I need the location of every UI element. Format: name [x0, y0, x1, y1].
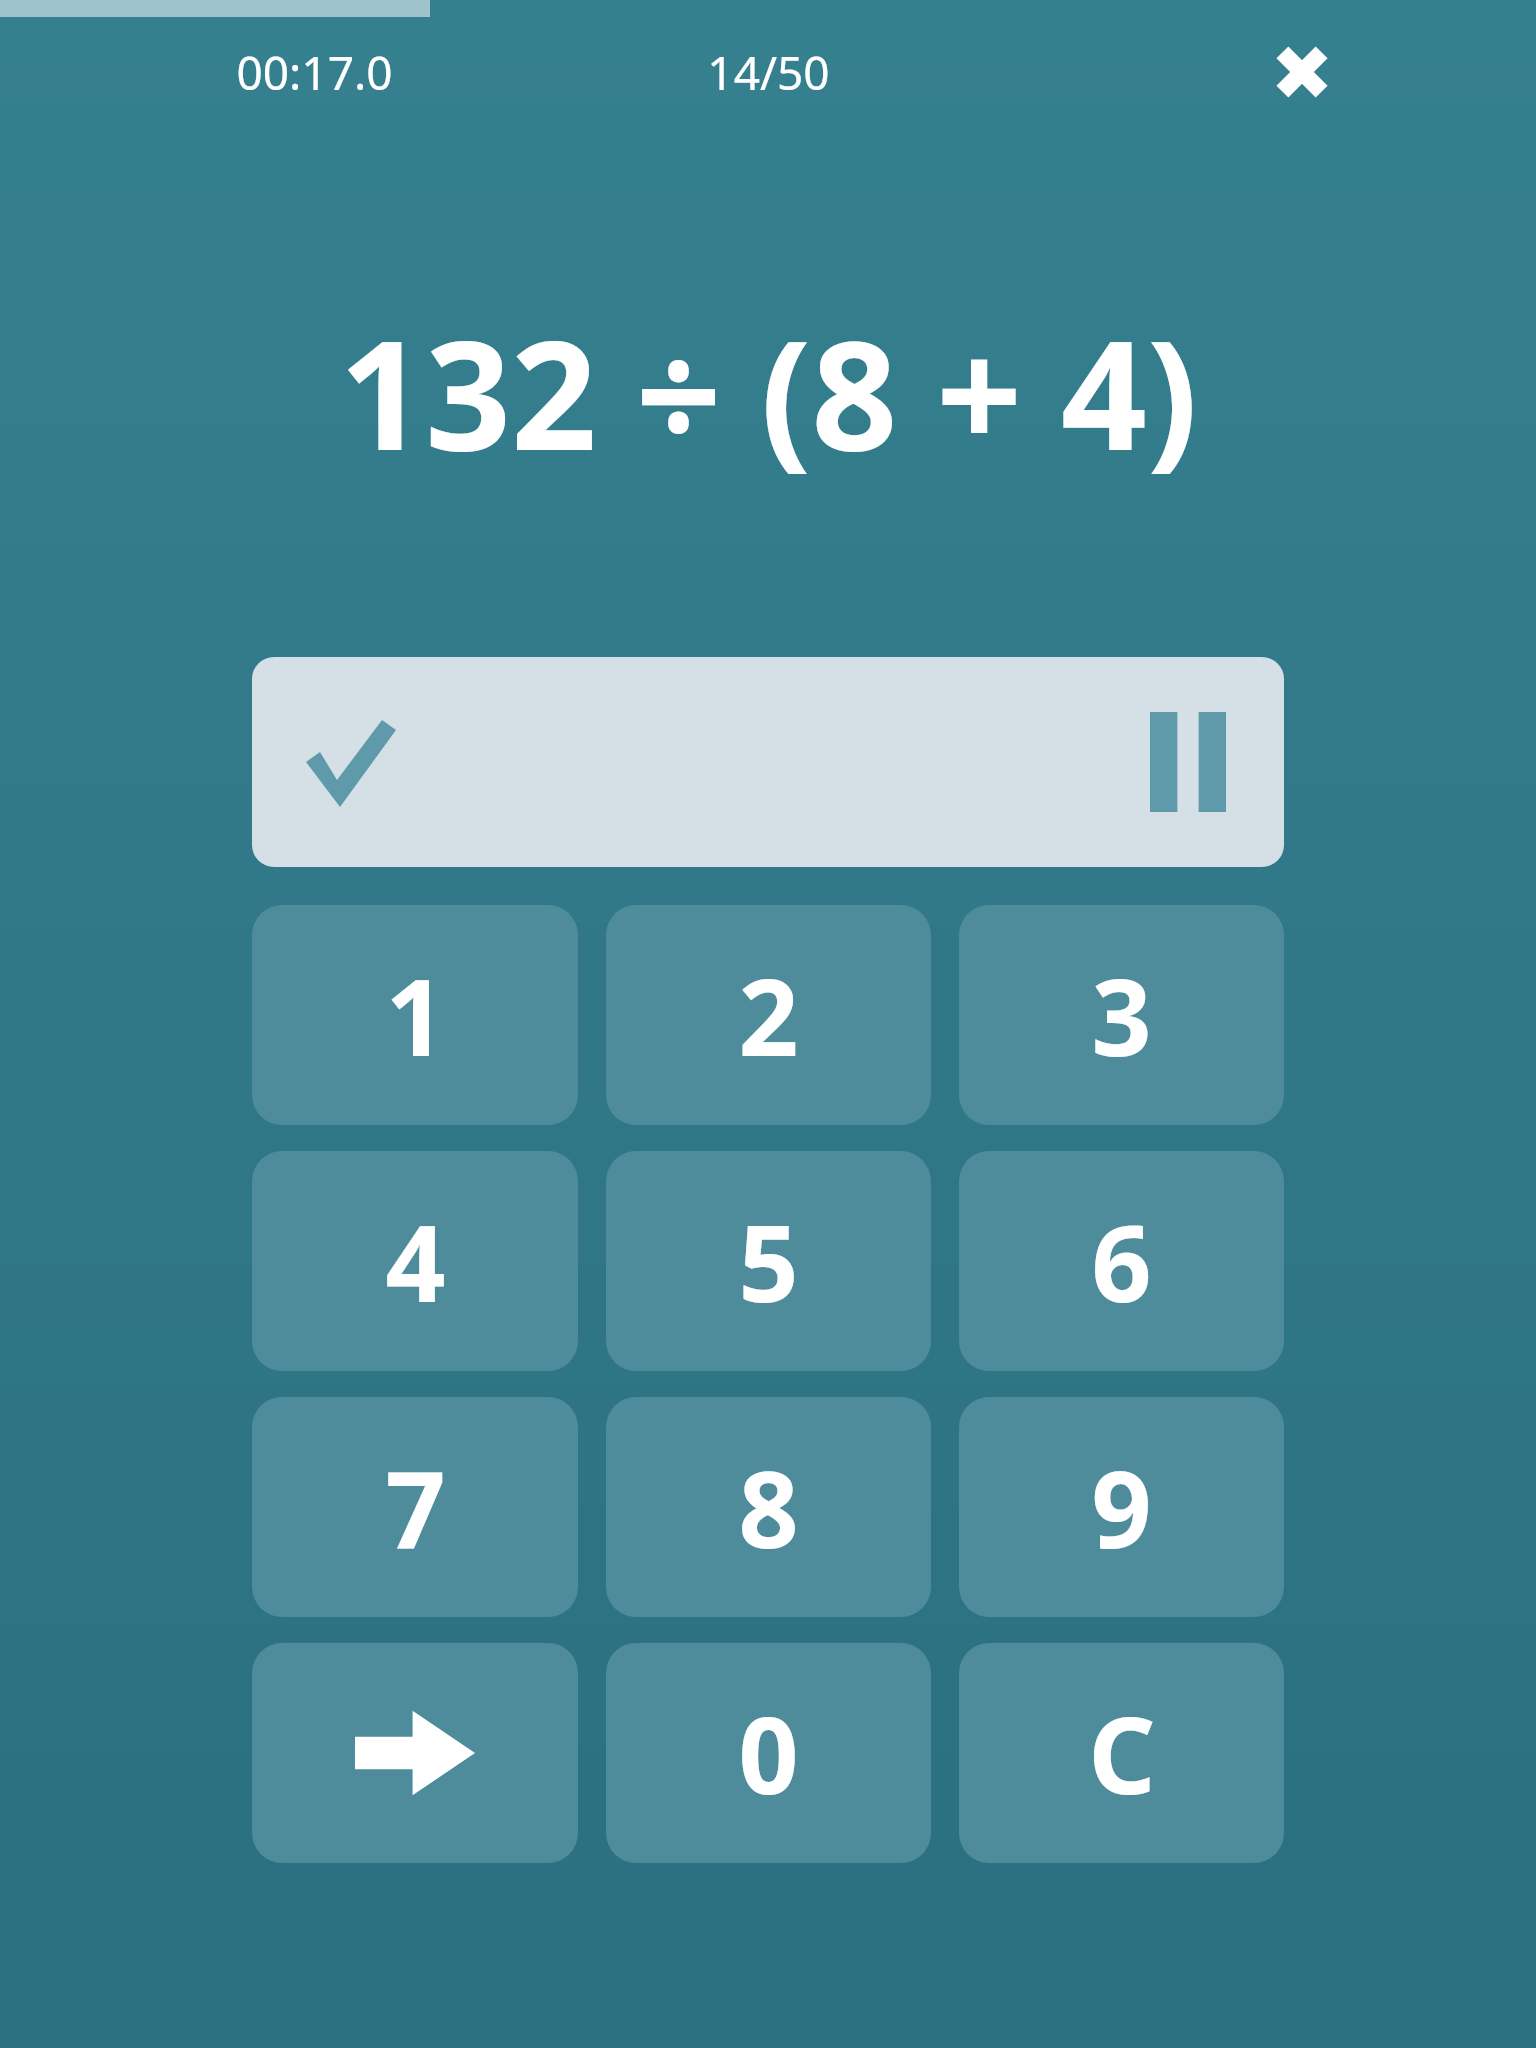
button[interactable]: 0	[606, 1643, 931, 1863]
button[interactable]: 7	[252, 1397, 578, 1617]
staticText: 3	[1091, 944, 1152, 1087]
button[interactable]: 9	[959, 1397, 1284, 1617]
staticText: 4	[385, 1190, 446, 1333]
button[interactable]: C	[959, 1643, 1284, 1863]
button[interactable]: Submit answer	[296, 708, 404, 816]
staticText: 00:17.0	[236, 41, 393, 104]
staticText: 8	[738, 1436, 799, 1579]
button[interactable]: 6	[959, 1151, 1284, 1371]
staticText: 132 ÷ (8 + 4)	[339, 290, 1198, 494]
button[interactable]: 2	[606, 905, 931, 1125]
button[interactable]: 3	[959, 905, 1284, 1125]
staticText: 9	[1091, 1436, 1152, 1579]
button[interactable]: Submit answer	[252, 657, 1284, 867]
staticText: 0	[738, 1682, 799, 1825]
staticText: 14/50	[707, 41, 830, 104]
button[interactable]: 4	[252, 1151, 578, 1371]
staticText: 1	[385, 944, 446, 1087]
button[interactable]: Next	[252, 1643, 578, 1863]
staticText: 6	[1091, 1190, 1152, 1333]
staticText: 5	[738, 1190, 799, 1333]
button[interactable]: 5	[606, 1151, 931, 1371]
staticText: C	[1088, 1682, 1156, 1825]
button[interactable]: Close	[1258, 28, 1346, 116]
staticText: 2	[738, 944, 799, 1087]
button[interactable]: 1	[252, 905, 578, 1125]
button[interactable]: Pause	[1140, 707, 1236, 817]
staticText: 7	[385, 1436, 446, 1579]
button[interactable]: 8	[606, 1397, 931, 1617]
